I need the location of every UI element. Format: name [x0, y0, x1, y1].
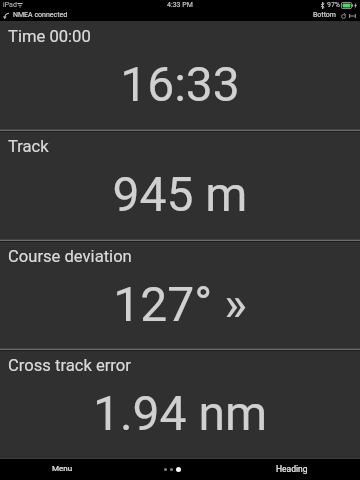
- button[interactable]: Heading: [270, 461, 314, 477]
- staticText: 1.94 nm: [0, 385, 360, 441]
- button[interactable]: Menu: [46, 461, 79, 476]
- staticText: 4:33 PM: [167, 1, 193, 9]
- button[interactable]: Time 00:00: [0, 21, 360, 131]
- staticText: Bottom: [313, 11, 336, 19]
- button[interactable]: Rotation lock: [341, 13, 346, 19]
- button[interactable]: Cross track error: [0, 350, 360, 460]
- staticText: 945 m: [0, 166, 360, 222]
- other: Back: [4, 13, 10, 19]
- staticText: 97%: [327, 1, 340, 9]
- button[interactable]: Resize: [349, 13, 356, 19]
- staticText: Time 00:00: [8, 27, 91, 46]
- staticText: Menu: [52, 464, 73, 473]
- staticText: Heading: [276, 464, 308, 474]
- button[interactable]: Bottom: [313, 11, 336, 19]
- staticText: iPad: [3, 1, 17, 9]
- staticText: NMEA connected: [13, 11, 68, 19]
- staticText: Cross track error: [8, 356, 131, 375]
- button[interactable]: Track: [0, 131, 360, 241]
- staticText: Course deviation: [8, 247, 132, 266]
- other: Rotation lock: [341, 13, 346, 19]
- button[interactable]: Course deviation: [0, 241, 360, 351]
- button[interactable]: NMEA connected: [13, 11, 68, 19]
- staticText: 127° »: [0, 276, 360, 332]
- other: Resize: [349, 13, 356, 19]
- staticText: Track: [8, 137, 49, 156]
- staticText: 16:33: [0, 56, 360, 112]
